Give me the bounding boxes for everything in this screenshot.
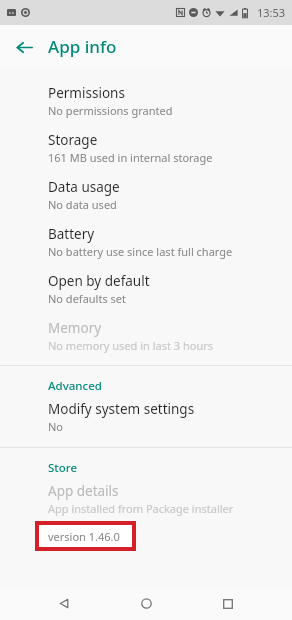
- button[interactable]: App details: [0, 476, 292, 519]
- staticText: Battery: [48, 225, 95, 243]
- staticText: No memory used in last 3 hours: [48, 338, 214, 353]
- staticText: Storage: [48, 131, 98, 149]
- button[interactable]: Memory: [0, 309, 292, 356]
- staticText: Advanced: [48, 378, 102, 394]
- staticText: Data usage: [48, 178, 120, 196]
- staticText: Memory: [48, 319, 102, 337]
- staticText: Open by default: [48, 272, 150, 290]
- staticText: App details: [48, 482, 119, 500]
- staticText: App info: [48, 35, 117, 58]
- staticText: Store: [48, 460, 77, 476]
- button[interactable]: Permissions: [0, 74, 292, 121]
- staticText: 161 MB used in internal storage: [48, 150, 213, 165]
- button[interactable]: Open by default: [0, 262, 292, 309]
- button[interactable]: Data usage: [0, 168, 292, 215]
- staticText: No: [48, 419, 64, 434]
- button[interactable]: Battery: [0, 215, 292, 262]
- staticText: No defaults set: [48, 291, 126, 306]
- button[interactable]: Back: [48, 587, 81, 620]
- button[interactable]: Storage: [0, 121, 292, 168]
- button[interactable]: Back: [9, 32, 39, 62]
- button[interactable]: Recent apps: [211, 587, 244, 620]
- button[interactable]: Home: [130, 587, 163, 620]
- staticText: Permissions: [48, 84, 125, 102]
- staticText: Modify system settings: [48, 400, 195, 418]
- staticText: 13:53: [257, 5, 286, 20]
- staticText: No permissions granted: [48, 103, 173, 118]
- staticText: No data used: [48, 197, 117, 212]
- button[interactable]: Modify system settings: [0, 394, 292, 437]
- staticText: No battery use since last full charge: [48, 244, 233, 259]
- staticText: App installed from Package installer: [48, 501, 234, 516]
- staticText: version 1.46.0: [48, 529, 120, 544]
